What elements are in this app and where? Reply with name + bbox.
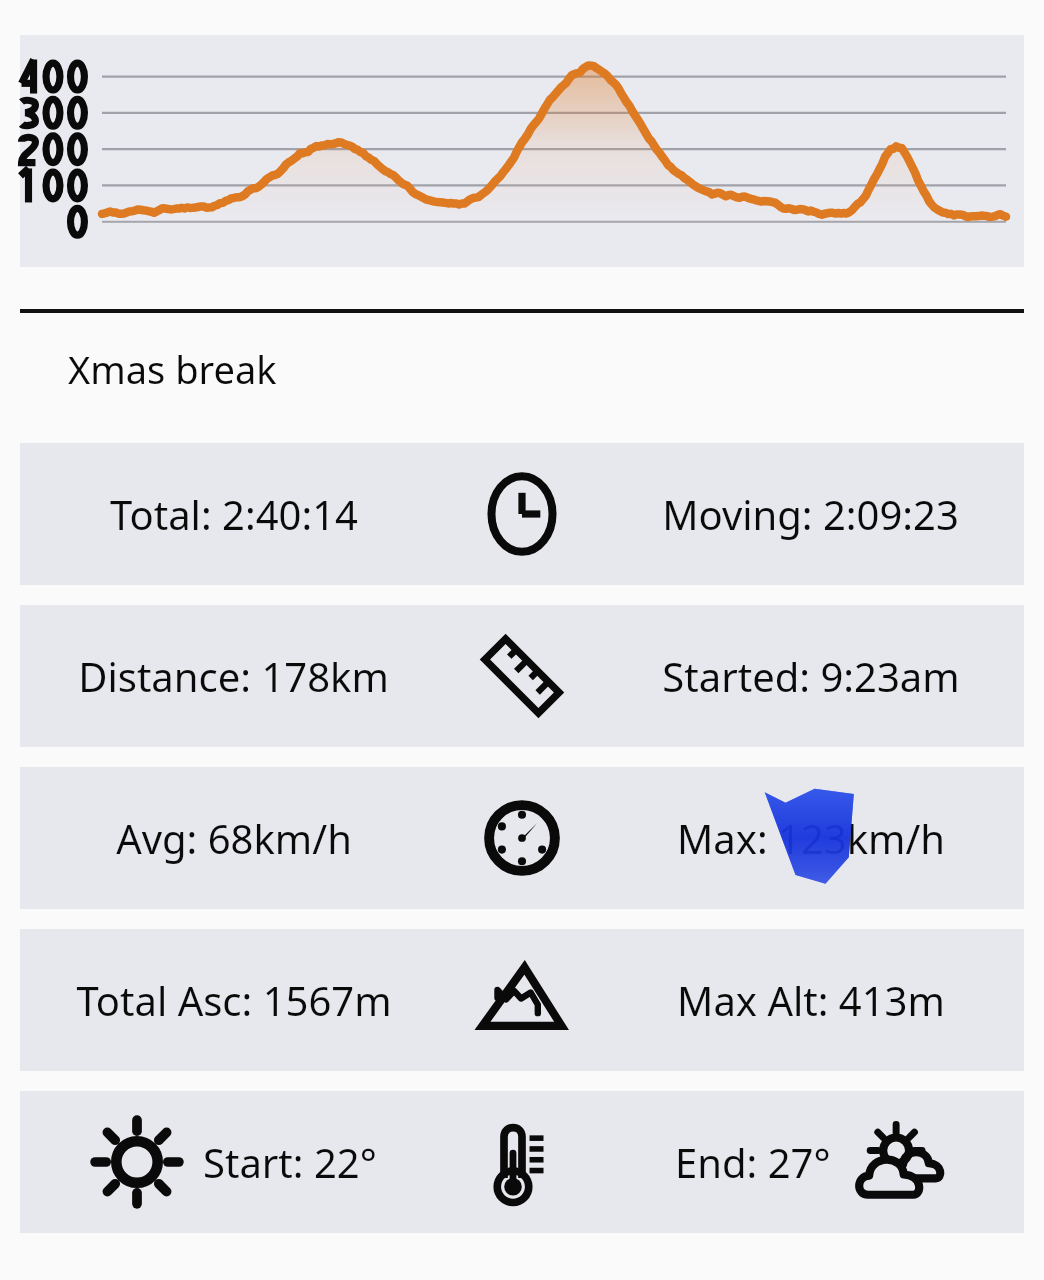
- button[interactable]: Xmas break: [68, 343, 277, 395]
- staticText: Max: 123km/h: [677, 811, 945, 865]
- staticText: Max Alt: 413m: [677, 973, 945, 1027]
- staticText: Started: 9:23am: [662, 649, 960, 703]
- staticText: Moving: 2:09:23: [662, 487, 959, 541]
- button[interactable]: Speed: [20, 767, 1024, 909]
- button[interactable]: Distance: [20, 605, 1024, 747]
- staticText: End: 27°: [675, 1135, 831, 1189]
- button[interactable]: Temperature: [20, 1091, 1024, 1233]
- button[interactable]: Elevation profile chart: [20, 35, 1024, 267]
- button[interactable]: Duration: [20, 443, 1024, 585]
- staticText: Start: 22°: [203, 1135, 377, 1189]
- staticText: Avg: 68km/h: [116, 811, 352, 865]
- button[interactable]: Altitude: [20, 929, 1024, 1071]
- staticText: Total: 2:40:14: [110, 487, 358, 541]
- staticText: Distance: 178km: [78, 649, 389, 703]
- staticText: Total Asc: 1567m: [76, 973, 392, 1027]
